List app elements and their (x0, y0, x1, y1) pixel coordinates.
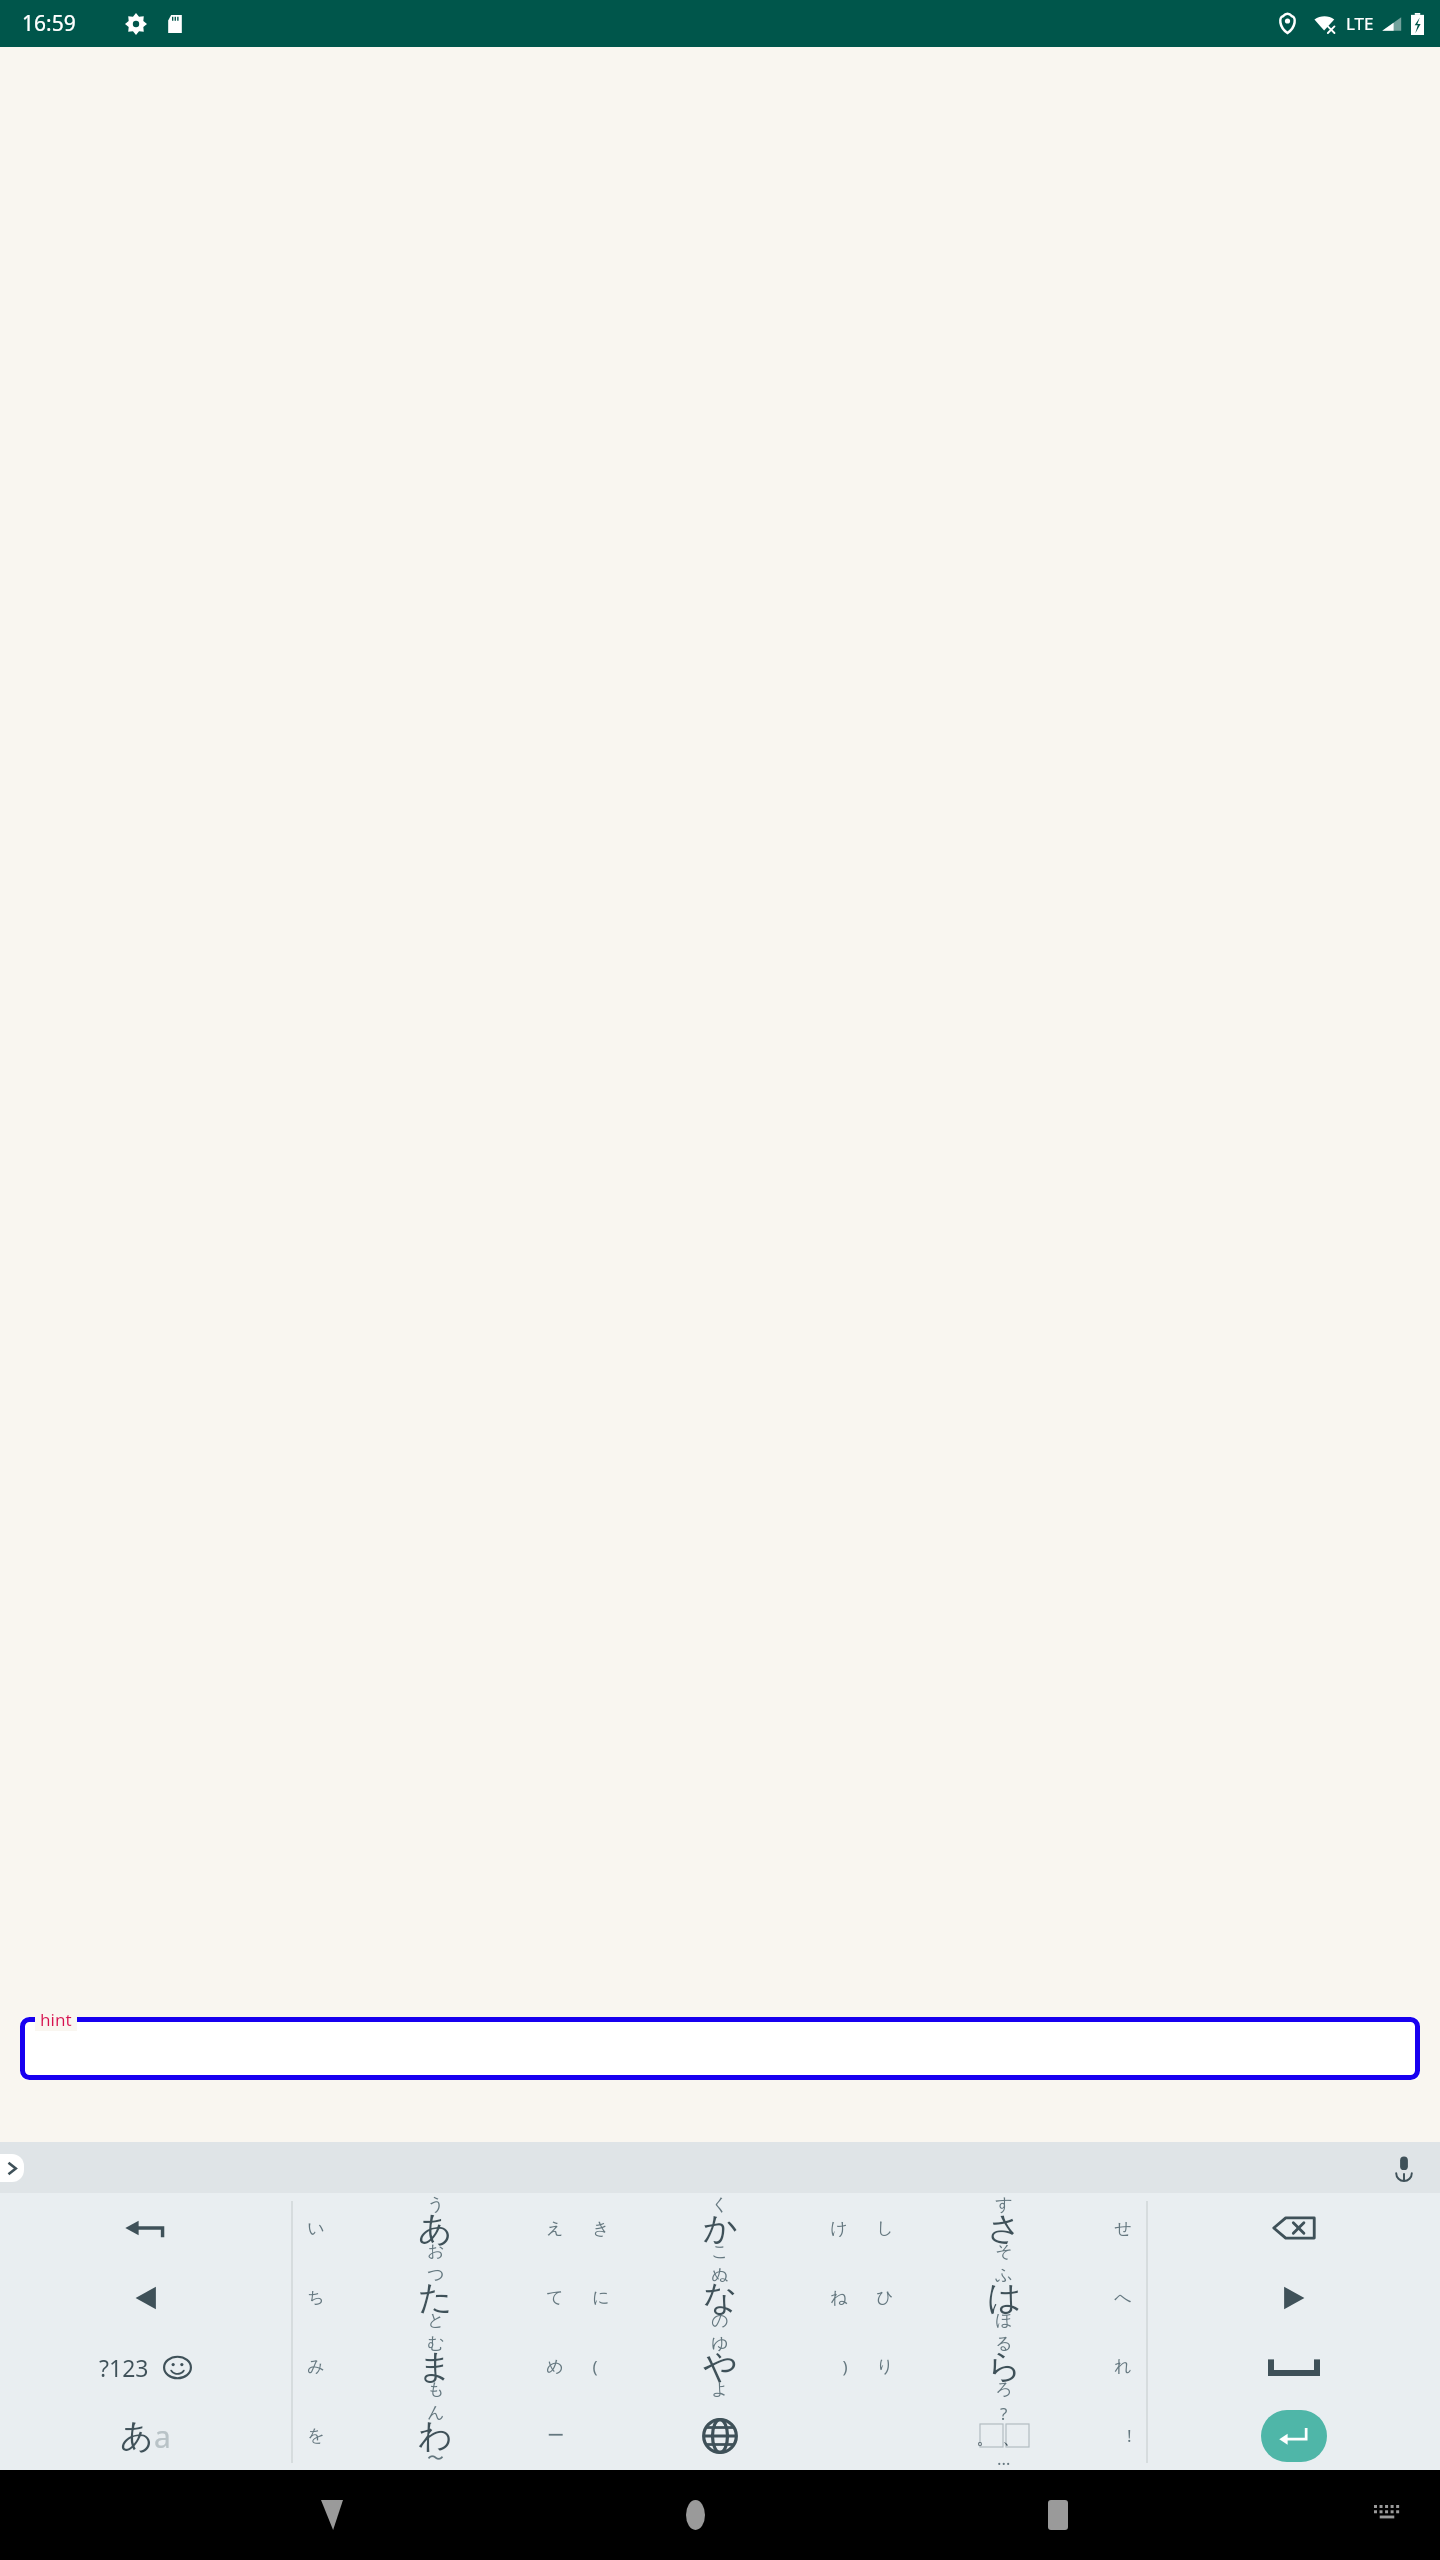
staticText: か (703, 2207, 738, 2250)
staticText: ひ (876, 2287, 894, 2308)
staticText: み (307, 2356, 325, 2377)
staticText: き (592, 2218, 610, 2239)
staticText: え (546, 2218, 564, 2239)
staticText: LTE (1346, 12, 1374, 35)
staticText: 16:59 (22, 9, 76, 38)
button[interactable]: Undo (0, 2193, 291, 2263)
button[interactable]: ふ (862, 2263, 1146, 2332)
staticText: ) (842, 2355, 848, 2378)
staticText: そ (995, 2241, 1013, 2262)
staticText: を (307, 2425, 325, 2446)
staticText: の (711, 2310, 729, 2331)
button[interactable]: Recents (1027, 2484, 1089, 2546)
staticText: さ (987, 2207, 1022, 2250)
button[interactable]: Cursor right (1148, 2263, 1440, 2332)
staticText: は (987, 2276, 1022, 2319)
button[interactable]: Home (664, 2484, 726, 2546)
button[interactable]: ? (862, 2401, 1146, 2470)
staticText: ふ (995, 2264, 1013, 2285)
staticText: す (995, 2194, 1013, 2215)
button[interactable]: ?123 (97, 2352, 151, 2383)
staticText: て (546, 2287, 564, 2308)
staticText: ー (547, 2425, 564, 2446)
staticText: ね (830, 2287, 848, 2308)
staticText: と (427, 2310, 445, 2331)
button[interactable]: Emoji (160, 2350, 194, 2384)
button[interactable]: う (293, 2193, 578, 2263)
button[interactable]: つ (293, 2263, 578, 2332)
button[interactable]: Space (1148, 2332, 1440, 2401)
staticText: 。 (976, 2426, 995, 2449)
button[interactable]: Enter (1261, 2410, 1327, 2462)
button[interactable]: す (862, 2193, 1146, 2263)
staticText: ん (427, 2402, 445, 2423)
button[interactable]: Cursor left (0, 2263, 291, 2332)
button[interactable]: Switch keyboard (1364, 2492, 1410, 2538)
button[interactable]: あ (0, 2401, 291, 2470)
button[interactable]: Backspace (1148, 2193, 1440, 2263)
staticText: う (427, 2194, 445, 2215)
staticText: り (876, 2356, 894, 2377)
staticText: よ (711, 2379, 729, 2400)
button[interactable]: Voice input (1382, 2146, 1426, 2190)
staticText: ゆ (711, 2333, 729, 2354)
staticText: や (703, 2345, 738, 2388)
staticText: ら (987, 2345, 1022, 2388)
staticText: い (307, 2218, 325, 2239)
button[interactable]: く (578, 2193, 862, 2263)
staticText: し (876, 2218, 894, 2239)
staticText: ま (418, 2345, 453, 2388)
button[interactable]: ん (293, 2401, 578, 2470)
staticText: ほ (995, 2310, 1013, 2331)
staticText: ?123 (99, 2352, 149, 2383)
staticText: た (418, 2276, 453, 2319)
staticText: hint (40, 2008, 72, 2031)
staticText: な (703, 2276, 738, 2319)
button[interactable]: む (293, 2332, 578, 2401)
staticText: a (154, 2416, 171, 2457)
staticText: わ (418, 2414, 453, 2457)
button[interactable]: Switch language (578, 2401, 862, 2470)
staticText: ろ (995, 2379, 1013, 2400)
staticText: け (830, 2218, 848, 2239)
staticText: ち (307, 2287, 325, 2308)
staticText: む (427, 2333, 445, 2354)
staticText: に (592, 2287, 610, 2308)
button[interactable]: る (862, 2332, 1146, 2401)
staticText: 、 (1002, 2426, 1021, 2449)
staticText: … (997, 2447, 1011, 2470)
staticText: ! (1127, 2424, 1132, 2447)
staticText: つ (427, 2264, 445, 2285)
staticText: せ (1114, 2218, 1132, 2239)
staticText: こ (711, 2241, 729, 2262)
staticText: あ (120, 2415, 154, 2457)
staticText: 〜 (427, 2448, 444, 2469)
staticText: め (546, 2356, 564, 2377)
staticText: ( (592, 2355, 598, 2378)
button[interactable] (20, 2017, 1420, 2080)
staticText: へ (1114, 2287, 1132, 2308)
staticText: も (427, 2379, 445, 2400)
staticText: く (711, 2194, 729, 2215)
staticText: お (427, 2241, 445, 2262)
staticText: ? (1000, 2402, 1008, 2425)
staticText: る (995, 2333, 1013, 2354)
staticText: れ (1114, 2356, 1132, 2377)
button[interactable]: Back (301, 2484, 363, 2546)
button[interactable]: ぬ (578, 2263, 862, 2332)
staticText: ぬ (711, 2264, 729, 2285)
button[interactable]: ゆ (578, 2332, 862, 2401)
button[interactable]: Expand toolbar (0, 2154, 24, 2182)
staticText: あ (418, 2207, 453, 2250)
